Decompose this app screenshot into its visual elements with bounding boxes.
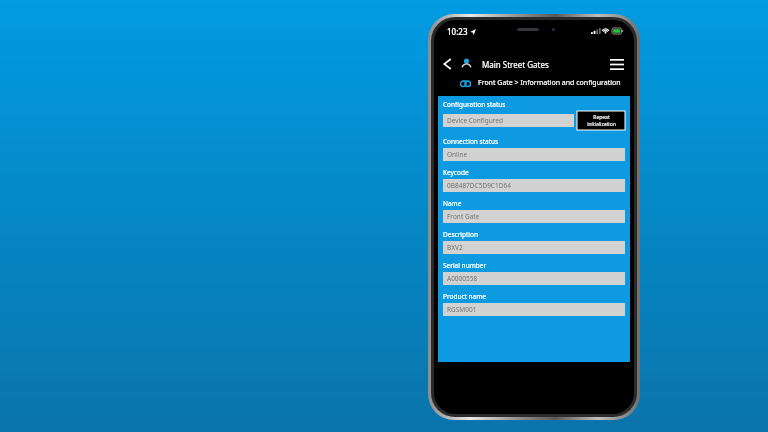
button[interactable]: Repeat initialization <box>577 111 625 130</box>
staticText: 10:23 <box>447 26 468 37</box>
staticText: Description <box>443 230 478 239</box>
button[interactable]: BXV2 <box>443 241 625 254</box>
staticText: Product name <box>443 292 486 301</box>
staticText: A0000558 <box>447 274 478 283</box>
staticText: Device Configured <box>447 116 503 125</box>
button[interactable]: Online <box>443 148 625 161</box>
button[interactable]: Menu <box>607 54 627 74</box>
staticText: Repeat initialization <box>587 114 616 127</box>
button[interactable]: A0000558 <box>443 272 625 285</box>
staticText: 0B8487DC5D9C1D64 <box>447 181 511 190</box>
staticText: Front Gate <box>447 212 480 221</box>
staticText: Connection status <box>443 137 499 146</box>
button[interactable]: RGSM001 <box>443 303 625 316</box>
button[interactable]: Front Gate <box>443 210 625 223</box>
staticText: Keycode <box>443 168 469 177</box>
button[interactable]: Back <box>440 56 456 72</box>
button[interactable]: 0B8487DC5D9C1D64 <box>443 179 625 192</box>
button[interactable]: Device Configured <box>443 114 574 127</box>
staticText: Name <box>443 199 462 208</box>
staticText: Main Street Gates <box>482 59 549 70</box>
staticText: Front Gate > Information and configurati… <box>478 78 621 88</box>
staticText: Configuration status <box>443 100 506 109</box>
staticText: Online <box>447 150 468 159</box>
button[interactable]: Account <box>458 56 474 72</box>
staticText: BXV2 <box>447 243 463 252</box>
staticText: RGSM001 <box>447 305 477 314</box>
staticText: Serial number <box>443 261 487 270</box>
